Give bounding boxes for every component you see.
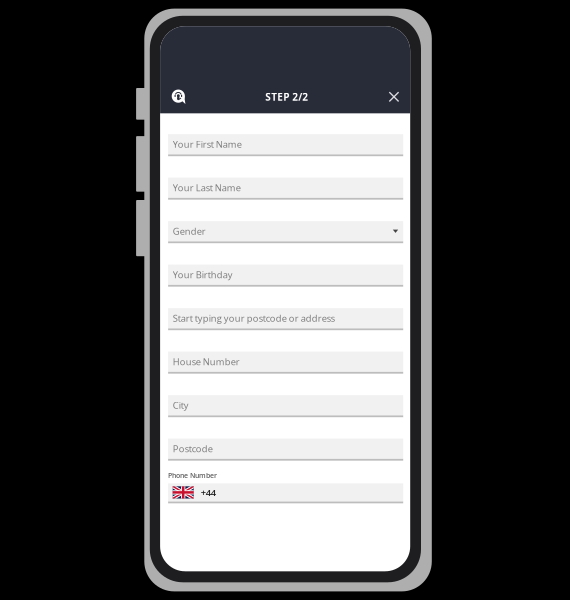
button[interactable]: City: [168, 395, 403, 417]
staticText: House Number: [173, 355, 240, 368]
button[interactable]: Customer support: [172, 89, 186, 104]
staticText: Postcode: [173, 442, 213, 455]
button[interactable]: House Number: [168, 352, 403, 374]
staticText: Your Birthday: [173, 268, 233, 281]
button[interactable]: Your First Name: [168, 134, 403, 156]
staticText: +44: [201, 486, 216, 499]
staticText: Phone Number: [168, 470, 217, 480]
button[interactable]: Postcode: [168, 439, 403, 461]
button[interactable]: +44: [168, 483, 403, 503]
staticText: Start typing your postcode or address: [173, 312, 335, 325]
button[interactable]: Your Last Name: [168, 178, 403, 200]
staticText: Your First Name: [173, 138, 242, 151]
staticText: Your Last Name: [173, 181, 241, 194]
staticText: City: [173, 399, 189, 412]
button[interactable]: Start typing your postcode or address: [168, 308, 403, 330]
button[interactable]: Your Birthday: [168, 265, 403, 287]
staticText: Gender: [173, 225, 206, 238]
button[interactable]: Gender: [168, 221, 403, 243]
staticText: STEP 2/2: [265, 90, 308, 104]
button[interactable]: Close: [389, 92, 399, 101]
